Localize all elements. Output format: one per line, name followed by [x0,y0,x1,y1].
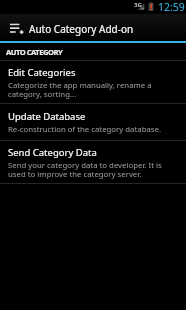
other: Battery [147,1,155,13]
staticText: 12:59 [158,0,185,14]
staticText: Categorize the app manually, rename a ca… [8,80,178,100]
staticText: 3G [134,1,142,9]
button[interactable]: Update Database [0,104,186,141]
other: App icon [10,23,24,34]
staticText: AUTO CATEGORY [6,47,63,57]
staticText: Re-construction of the category database… [8,124,162,135]
staticText: Auto Category Add-on [29,22,134,36]
button[interactable]: App icon [0,14,186,41]
button[interactable]: Send Category Data [0,141,186,183]
button[interactable]: Edit Categories [0,61,186,104]
staticText: Update Database [8,110,86,123]
other: Mobile signal [137,3,145,11]
staticText: Edit Categories [8,66,76,79]
staticText: Send your category data to developer. It… [8,160,178,180]
staticText: Send Category Data [8,146,97,159]
